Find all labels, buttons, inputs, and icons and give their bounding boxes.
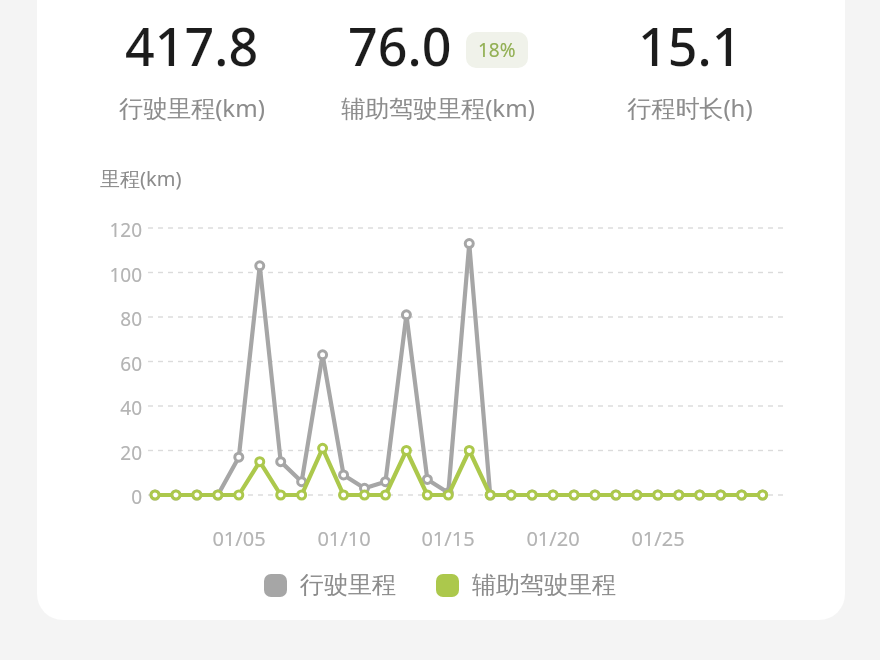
- staticText: 里程(km): [100, 165, 182, 192]
- staticText: 01/05: [212, 525, 266, 552]
- button[interactable]: 辅助驾驶里程: [436, 570, 616, 600]
- staticText: 辅助驾驶里程: [472, 570, 616, 600]
- button[interactable]: 76.0: [278, 10, 598, 124]
- staticText: 01/25: [631, 525, 685, 552]
- staticText: 0: [131, 484, 142, 510]
- staticText: 100: [109, 262, 142, 288]
- button[interactable]: 15.1: [530, 10, 850, 124]
- staticText: 辅助驾驶里程(km): [341, 91, 535, 124]
- staticText: 行程时长(h): [627, 91, 753, 124]
- staticText: 01/10: [317, 525, 371, 552]
- staticText: 01/15: [421, 525, 475, 552]
- staticText: 417.8: [125, 10, 259, 81]
- staticText: 76.0: [348, 10, 452, 81]
- staticText: 60: [120, 351, 142, 377]
- staticText: 01/20: [526, 525, 580, 552]
- button[interactable]: 行驶里程: [264, 570, 396, 600]
- staticText: 120: [109, 217, 142, 243]
- staticText: 20: [120, 440, 142, 466]
- staticText: 80: [120, 306, 142, 332]
- staticText: 40: [120, 395, 142, 421]
- staticText: 18%: [478, 37, 516, 63]
- staticText: 行驶里程(km): [119, 91, 265, 124]
- staticText: 行驶里程: [300, 570, 396, 600]
- button[interactable]: 417.8: [32, 10, 352, 124]
- staticText: 15.1: [638, 10, 742, 81]
